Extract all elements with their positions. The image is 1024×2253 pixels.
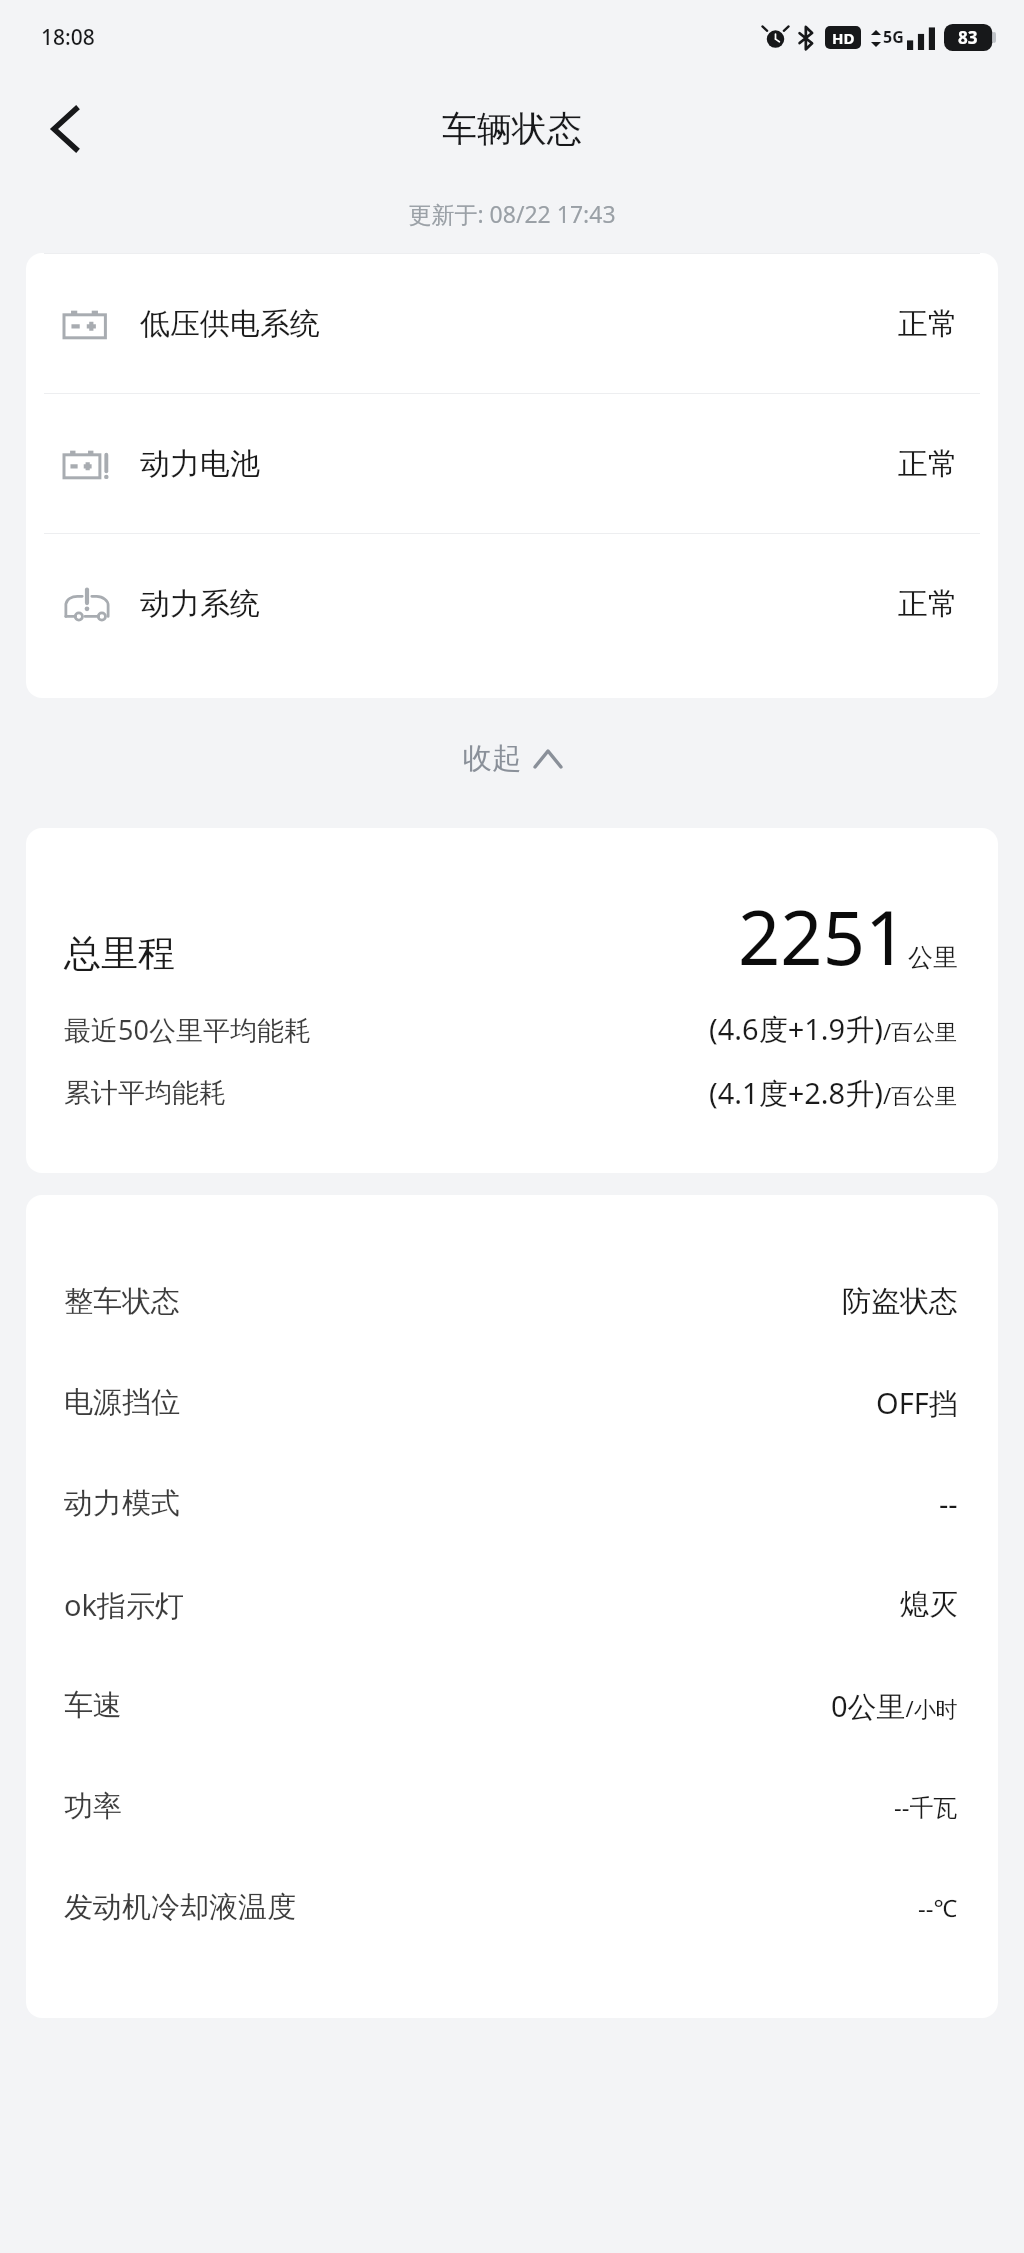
button[interactable]: ok指示灯 <box>26 1554 998 1655</box>
staticText: 车速 <box>64 1687 122 1724</box>
button[interactable]: 功率 <box>26 1756 998 1857</box>
staticText: 动力系统 <box>140 585 260 623</box>
staticText: 2251 <box>738 886 908 987</box>
staticText: ok指示灯 <box>64 1585 185 1625</box>
button[interactable]: 动力模式 <box>26 1453 998 1554</box>
button[interactable]: 动力系统 <box>26 534 998 673</box>
staticText: (4.1度+2.8升)/百公里 <box>709 1073 958 1113</box>
staticText: 车辆状态 <box>442 107 582 151</box>
staticText: 累计平均能耗 <box>64 1076 226 1110</box>
staticText: 5G <box>883 26 904 48</box>
button[interactable]: 电源挡位 <box>26 1352 998 1453</box>
staticText: HD <box>832 28 855 48</box>
staticText: OFF挡 <box>876 1383 958 1423</box>
button[interactable]: 收起 <box>435 724 589 793</box>
staticText: 功率 <box>64 1788 122 1825</box>
staticText: 电源挡位 <box>64 1384 180 1421</box>
staticText: 发动机冷却液温度 <box>64 1889 296 1926</box>
staticText: 总里程 <box>64 930 175 977</box>
staticText: 正常 <box>898 445 958 483</box>
button[interactable]: 低压供电系统 <box>26 254 998 393</box>
staticText: 动力电池 <box>140 445 260 483</box>
staticText: 83 <box>958 26 978 49</box>
button[interactable]: 发动机冷却液温度 <box>26 1857 998 1958</box>
staticText: 熄灭 <box>900 1586 958 1623</box>
staticText: 18:08 <box>41 23 95 52</box>
button[interactable]: 动力电池 <box>26 394 998 533</box>
staticText: 正常 <box>898 585 958 623</box>
staticText: 整车状态 <box>64 1283 180 1320</box>
staticText: 更新于: 08/22 17:43 <box>0 198 1024 229</box>
staticText: 0公里/小时 <box>831 1686 958 1726</box>
button[interactable]: 车速 <box>26 1655 998 1756</box>
staticText: -- <box>939 1484 958 1523</box>
staticText: 低压供电系统 <box>140 305 320 343</box>
staticText: 防盗状态 <box>842 1283 958 1320</box>
button[interactable]: Back <box>34 98 96 160</box>
staticText: 公里 <box>908 942 958 973</box>
staticText: 动力模式 <box>64 1485 180 1522</box>
staticText: 最近50公里平均能耗 <box>64 1011 311 1048</box>
staticText: 正常 <box>898 305 958 343</box>
staticText: --千瓦 <box>894 1790 958 1823</box>
staticText: 收起 <box>463 740 521 777</box>
staticText: (4.6度+1.9升)/百公里 <box>709 1009 958 1049</box>
button[interactable]: 整车状态 <box>26 1251 998 1352</box>
staticText: --℃ <box>918 1891 958 1924</box>
